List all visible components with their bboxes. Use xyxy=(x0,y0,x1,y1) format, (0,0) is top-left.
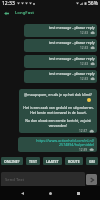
button[interactable]: test message - please reply xyxy=(24,55,97,68)
staticText: 12:33 xyxy=(80,77,89,81)
button[interactable]: Send xyxy=(86,174,97,185)
staticText: Het is een zaak van geduld en uitprobere… xyxy=(23,105,94,115)
button[interactable]: Recents xyxy=(72,187,84,199)
staticText: test message - please reply xyxy=(49,40,95,45)
button[interactable]: test message - please reply xyxy=(24,70,97,83)
button[interactable]: GM xyxy=(86,157,98,165)
staticText: test message - please reply xyxy=(49,71,95,76)
button[interactable]: https://www.actionheld.com/nl-nl/2574894… xyxy=(18,137,97,152)
staticText: ONLINE? xyxy=(4,159,20,164)
button[interactable]: Home xyxy=(44,187,56,199)
staticText: Send Text xyxy=(5,177,24,183)
staticText: TEST xyxy=(29,159,37,164)
button[interactable]: ONLINE? xyxy=(1,157,23,165)
button[interactable]: LAATST xyxy=(43,157,62,165)
button[interactable]: Send Text xyxy=(1,172,85,187)
button[interactable]: TEST xyxy=(26,157,40,165)
staticText: https://www.actionheld.com/nl-nl/2574894… xyxy=(21,138,94,148)
button[interactable]: ROUTE xyxy=(65,157,83,165)
staticText: test message - please reply xyxy=(49,25,95,30)
staticText: ROUTE xyxy=(68,159,80,164)
staticText: @maupspam, en als je op het dak klimt? xyxy=(24,92,92,97)
staticText: GM xyxy=(89,159,95,164)
button[interactable]: Back xyxy=(16,187,28,199)
staticText: LongFast xyxy=(15,10,35,16)
staticText: test message - please reply xyxy=(49,56,95,61)
staticText: 12:33 xyxy=(80,46,89,50)
button[interactable]: Back xyxy=(0,7,12,19)
staticText: 12:33 xyxy=(2,0,15,7)
staticText: Nu dan alvast een eerste bericht, zojuis… xyxy=(25,118,91,128)
staticText: LAATST xyxy=(46,159,59,164)
staticText: 12:33 xyxy=(80,31,89,35)
button[interactable]: @maupspam, en als je op het dak klimt? xyxy=(19,89,97,133)
staticText: 12:39 xyxy=(79,148,88,151)
staticText: 12:33 xyxy=(80,62,89,66)
staticText: 12:37 xyxy=(79,129,88,133)
staticText: 56% xyxy=(88,0,98,7)
button[interactable]: test message - please reply xyxy=(24,39,97,52)
button[interactable]: test message - please reply xyxy=(24,24,97,37)
